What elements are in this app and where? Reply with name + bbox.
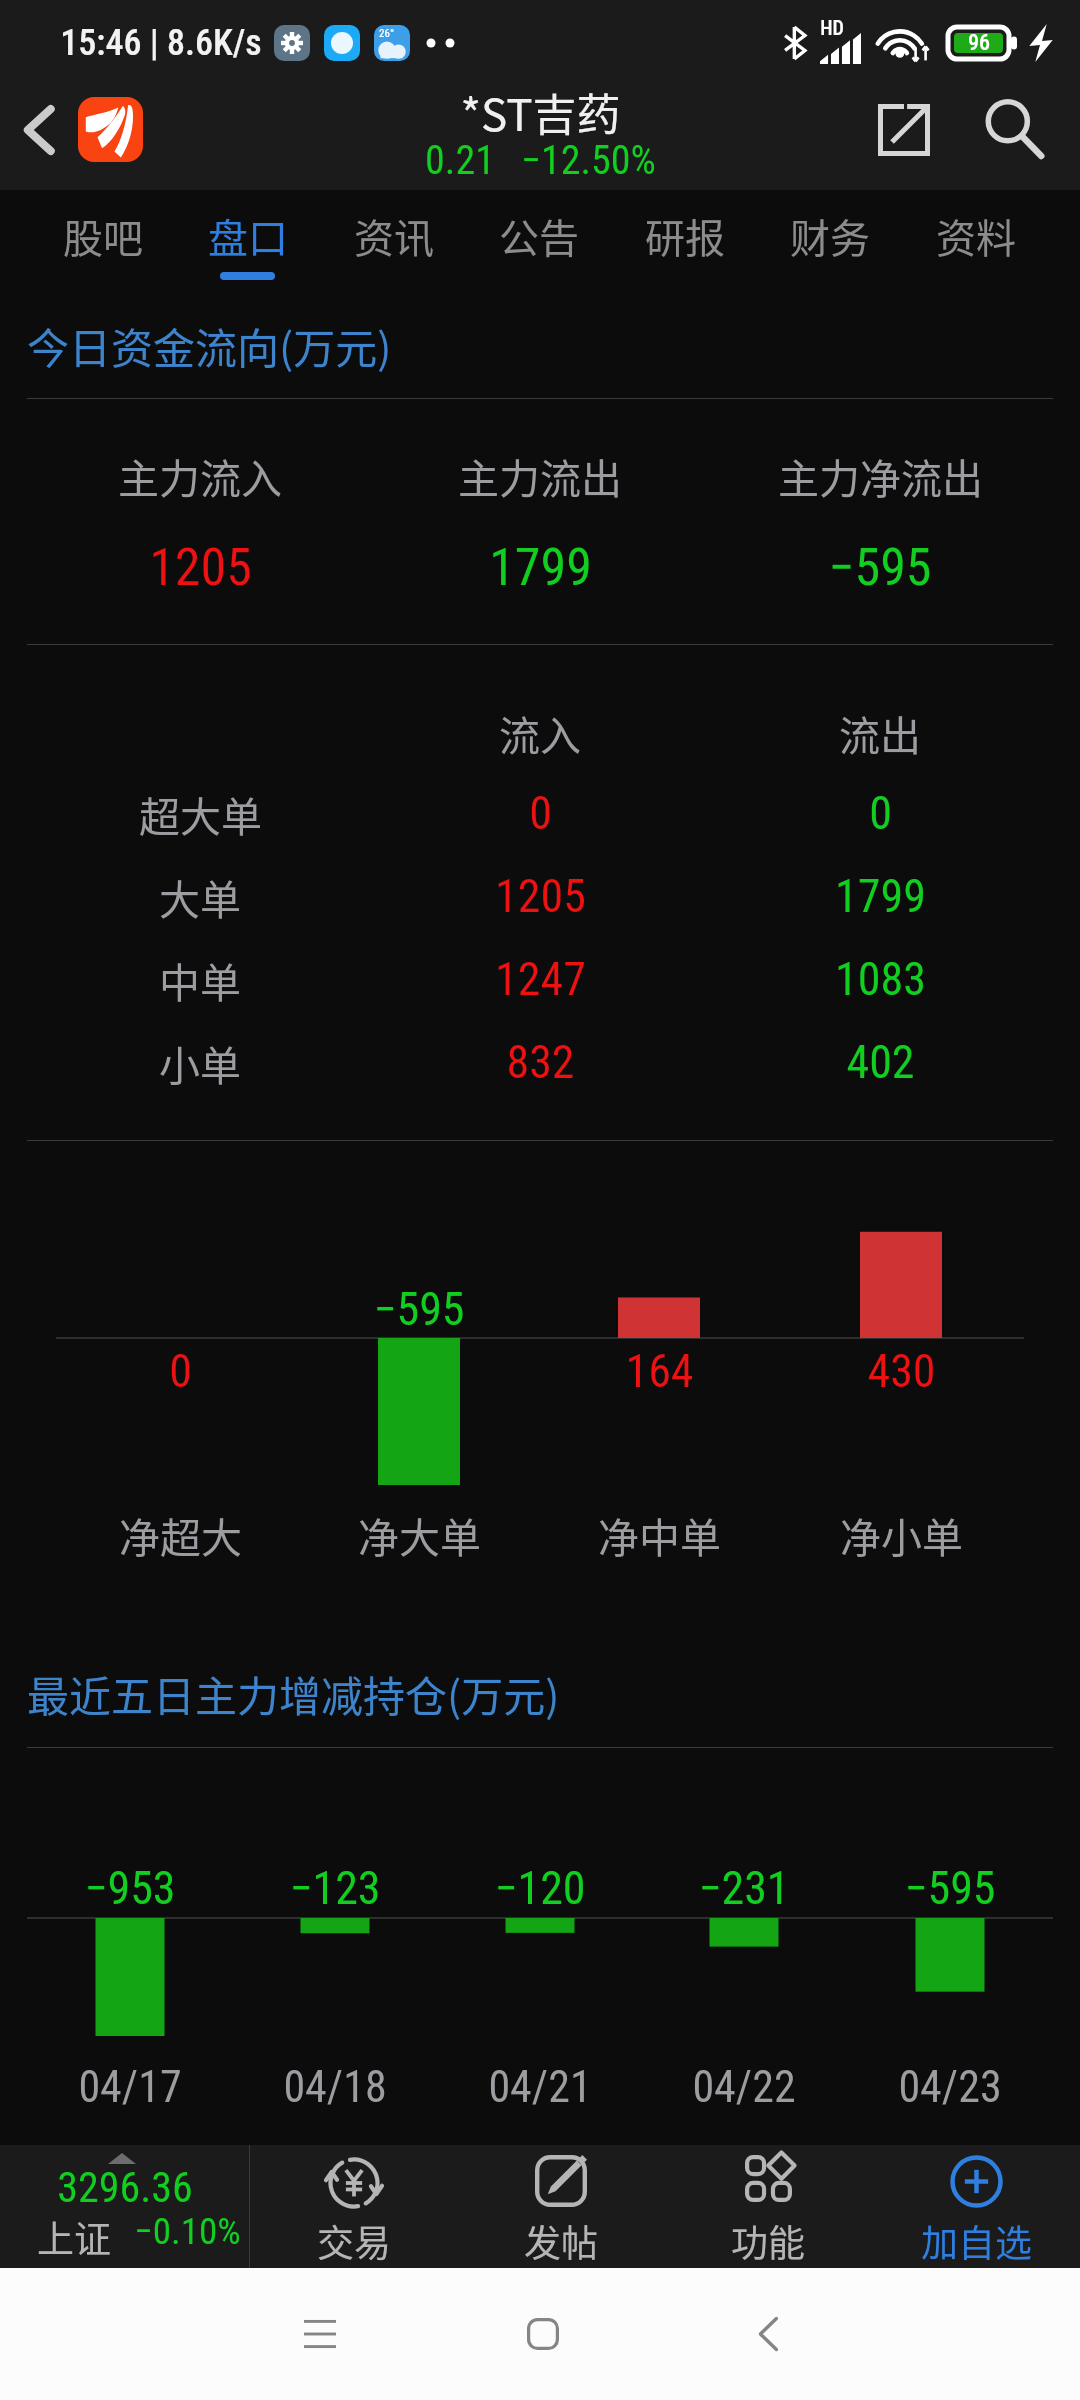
staticText: 交易	[317, 2214, 391, 2268]
staticText: 资讯	[354, 207, 434, 265]
staticText: −123	[289, 1861, 381, 1915]
staticText: 1205	[495, 869, 586, 923]
staticText: −231	[698, 1861, 790, 1915]
staticText: 04/17	[78, 2061, 182, 2113]
staticText: 研报	[645, 207, 725, 265]
staticText: −12.50%	[521, 137, 656, 181]
button[interactable]: Back	[708, 2268, 828, 2400]
staticText: −0.10%	[134, 2210, 241, 2253]
staticText: 1247	[495, 952, 586, 1006]
staticText: *ST吉药	[460, 80, 621, 142]
button[interactable]: 股吧	[30, 190, 175, 287]
button[interactable]: 3296.36	[0, 2145, 249, 2268]
staticText: 今日资金流向(万元)	[27, 315, 392, 376]
staticText: 0	[169, 1344, 192, 1398]
button[interactable]: 资料	[903, 190, 1048, 287]
staticText: 04/21	[488, 2061, 592, 2113]
button[interactable]: Search	[962, 78, 1066, 182]
staticText: −595	[904, 1861, 996, 1915]
staticText: 主力净流出	[778, 446, 983, 505]
button[interactable]: 功能	[664, 2145, 872, 2268]
button[interactable]: Recent apps	[260, 2268, 380, 2400]
staticText: 3296.36	[57, 2163, 193, 2212]
staticText: 1083	[835, 952, 926, 1006]
staticText: 1799	[489, 537, 592, 598]
staticText: 1205	[149, 537, 252, 598]
staticText: 大单	[159, 867, 241, 926]
button[interactable]: Eastmoney home	[78, 97, 143, 162]
staticText: 主力流入	[118, 446, 282, 505]
staticText: 04/18	[283, 2061, 387, 2113]
button[interactable]: 研报	[612, 190, 757, 287]
staticText: 资料	[936, 207, 1016, 265]
button[interactable]: 交易	[250, 2145, 457, 2268]
button[interactable]: Share	[852, 78, 956, 182]
staticText: 0	[529, 786, 552, 840]
staticText: 小单	[159, 1033, 241, 1092]
staticText: 0	[869, 786, 892, 840]
staticText: 流出	[839, 703, 921, 762]
staticText: 164	[625, 1344, 694, 1398]
staticText: HD	[820, 16, 844, 39]
staticText: 0.21	[425, 137, 495, 181]
staticText: 04/23	[898, 2061, 1002, 2113]
staticText: 加自选	[921, 2214, 1032, 2268]
button[interactable]: 加自选	[872, 2145, 1080, 2268]
staticText: 超大单	[139, 784, 262, 843]
staticText: 主力流出	[458, 446, 622, 505]
staticText: 832	[506, 1035, 575, 1089]
button[interactable]: Back	[0, 78, 78, 182]
staticText: 96	[968, 30, 990, 56]
staticText: 流入	[499, 703, 581, 762]
button[interactable]: 资讯	[321, 190, 466, 287]
staticText: 26°	[379, 27, 394, 40]
staticText: 中单	[159, 950, 241, 1009]
staticText: −120	[494, 1861, 586, 1915]
staticText: 公告	[499, 207, 579, 265]
staticText: 上证	[37, 2210, 111, 2264]
staticText: 财务	[790, 207, 870, 265]
staticText: 430	[867, 1344, 936, 1398]
staticText: −953	[84, 1861, 176, 1915]
button[interactable]: 盘口	[175, 190, 320, 287]
staticText: 股吧	[63, 207, 143, 265]
button[interactable]: Home	[483, 2268, 603, 2400]
staticText: 15:46 | 8.6K/s	[60, 22, 262, 64]
staticText: 盘口	[208, 207, 288, 265]
staticText: −595	[828, 537, 932, 598]
staticText: 净中单	[598, 1505, 721, 1564]
staticText: 功能	[731, 2214, 805, 2268]
staticText: 1799	[835, 869, 926, 923]
staticText: 04/22	[692, 2061, 796, 2113]
staticText: 最近五日主力增减持仓(万元)	[27, 1663, 560, 1724]
staticText: 402	[846, 1035, 915, 1089]
staticText: −595	[373, 1282, 465, 1336]
button[interactable]: 财务	[757, 190, 902, 287]
button[interactable]: 发帖	[457, 2145, 664, 2268]
button[interactable]: 公告	[466, 190, 611, 287]
staticText: 发帖	[524, 2214, 598, 2268]
staticText: 净小单	[840, 1505, 963, 1564]
staticText: 净超大	[119, 1505, 242, 1564]
staticText: 净大单	[358, 1505, 481, 1564]
